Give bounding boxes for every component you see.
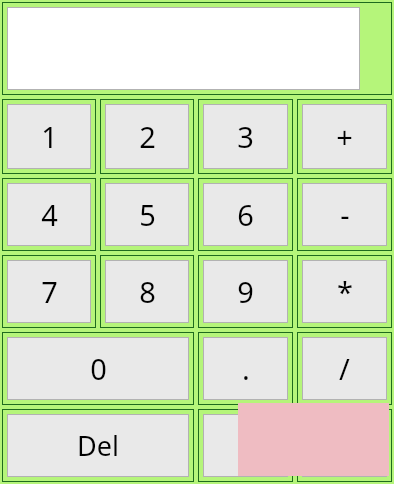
staticText: 2 xyxy=(139,117,156,156)
staticText: * xyxy=(337,272,353,311)
staticText: 9 xyxy=(237,272,254,311)
button[interactable]: 6 xyxy=(203,183,288,246)
button[interactable]: 0 xyxy=(7,337,189,400)
staticText: - xyxy=(340,195,350,234)
button[interactable]: 1 xyxy=(7,104,91,169)
staticText: 6 xyxy=(237,195,254,234)
staticText: Del xyxy=(77,427,119,464)
staticText: 8 xyxy=(139,272,156,311)
button[interactable]: 8 xyxy=(105,260,189,323)
staticText: / xyxy=(339,349,350,388)
button[interactable]: 2 xyxy=(105,104,189,169)
staticText: 0 xyxy=(90,349,107,388)
staticText: 7 xyxy=(41,272,58,311)
staticText: 1 xyxy=(41,117,58,156)
button[interactable]: 7 xyxy=(7,260,91,323)
button[interactable]: / xyxy=(302,337,387,400)
staticText: 3 xyxy=(237,117,254,156)
button[interactable]: Key xyxy=(203,414,288,477)
button[interactable]: . xyxy=(203,337,288,400)
button[interactable]: Display xyxy=(7,7,360,90)
button[interactable]: Del xyxy=(7,414,189,477)
button[interactable]: 5 xyxy=(105,183,189,246)
staticText: 5 xyxy=(139,195,156,234)
button[interactable]: * xyxy=(302,260,387,323)
staticText: + xyxy=(336,117,353,156)
button[interactable]: - xyxy=(302,183,387,246)
staticText: 4 xyxy=(41,195,58,234)
button[interactable]: 9 xyxy=(203,260,288,323)
button[interactable]: 4 xyxy=(7,183,91,246)
staticText: . xyxy=(242,349,250,388)
button[interactable]: + xyxy=(302,104,387,169)
button[interactable]: Key xyxy=(302,414,387,477)
button[interactable]: 3 xyxy=(203,104,288,169)
